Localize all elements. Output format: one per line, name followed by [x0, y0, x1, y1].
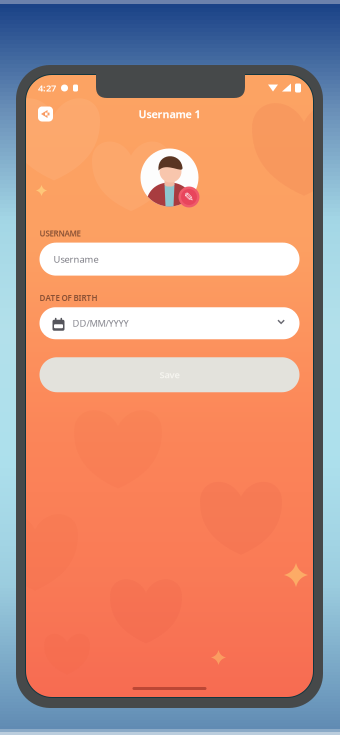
staticText: 4:27 [38, 82, 56, 94]
staticText: Save [159, 369, 179, 381]
button[interactable]: Username [39, 243, 299, 276]
staticText: DD/MM/YYYY [72, 317, 128, 329]
staticText: DATE OF BIRTH [39, 293, 97, 303]
staticText: Username [53, 253, 98, 265]
staticText: ✎ [184, 190, 194, 204]
button[interactable]: Back [38, 106, 53, 121]
staticText: USERNAME [39, 228, 80, 239]
button[interactable]: Save [39, 357, 299, 392]
button[interactable]: DD/MM/YYYY [39, 307, 299, 339]
staticText: Username 1 [138, 107, 200, 121]
